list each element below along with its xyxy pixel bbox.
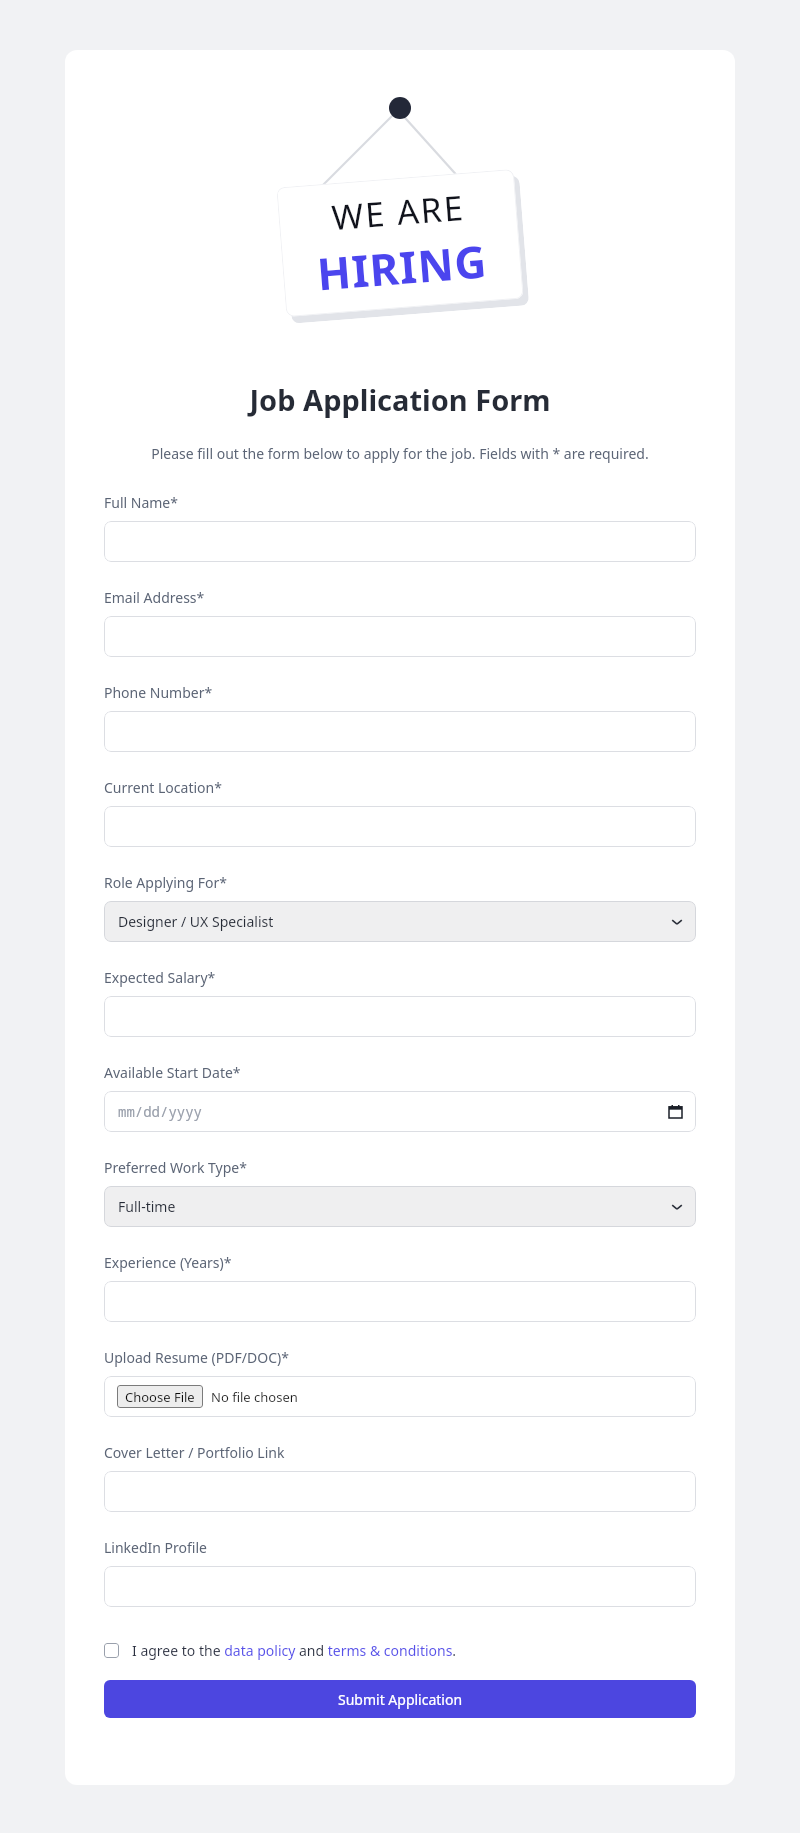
button[interactable] xyxy=(104,1566,696,1607)
button[interactable] xyxy=(104,711,696,752)
staticText: Expected Salary* xyxy=(104,968,216,987)
staticText: Role Applying For* xyxy=(104,873,227,892)
button[interactable] xyxy=(104,1471,696,1512)
staticText: WE ARE xyxy=(330,184,467,240)
button[interactable] xyxy=(104,1281,696,1322)
staticText: Please fill out the form below to apply … xyxy=(85,444,715,463)
staticText: Designer / UX Specialist xyxy=(118,912,274,931)
staticText: Full Name* xyxy=(104,493,178,512)
staticText: mm/dd/yyyy xyxy=(118,1102,202,1121)
staticText: Current Location* xyxy=(104,778,222,797)
staticText: Upload Resume (PDF/DOC)* xyxy=(104,1348,289,1367)
button[interactable] xyxy=(104,616,696,657)
staticText: Preferred Work Type* xyxy=(104,1158,247,1177)
staticText: Experience (Years)* xyxy=(104,1253,232,1272)
button[interactable]: Submit Application xyxy=(104,1680,696,1718)
staticText: Cover Letter / Portfolio Link xyxy=(104,1443,285,1462)
button[interactable]: Agree to data policy and terms xyxy=(104,1641,696,1660)
staticText: HIRING xyxy=(315,230,490,303)
staticText: Choose File xyxy=(125,1388,195,1406)
staticText: Submit Application xyxy=(338,1690,463,1709)
button[interactable] xyxy=(104,996,696,1037)
staticText: LinkedIn Profile xyxy=(104,1538,207,1557)
staticText: No file chosen xyxy=(211,1388,298,1406)
button[interactable]: Full-time xyxy=(104,1186,696,1227)
staticText: I agree to the data policy and terms & c… xyxy=(132,1641,457,1660)
staticText: Available Start Date* xyxy=(104,1063,241,1082)
other: Agree to data policy and terms xyxy=(104,1643,119,1658)
staticText: Phone Number* xyxy=(104,683,213,702)
staticText: Job Application Form xyxy=(65,380,735,419)
button[interactable]: mm/dd/yyyy xyxy=(104,1091,696,1132)
button[interactable] xyxy=(104,521,696,562)
button[interactable]: Choose File xyxy=(117,1385,203,1408)
staticText: Full-time xyxy=(118,1197,176,1216)
button[interactable]: Designer / UX Specialist xyxy=(104,901,696,942)
staticText: Email Address* xyxy=(104,588,205,607)
button[interactable] xyxy=(104,806,696,847)
